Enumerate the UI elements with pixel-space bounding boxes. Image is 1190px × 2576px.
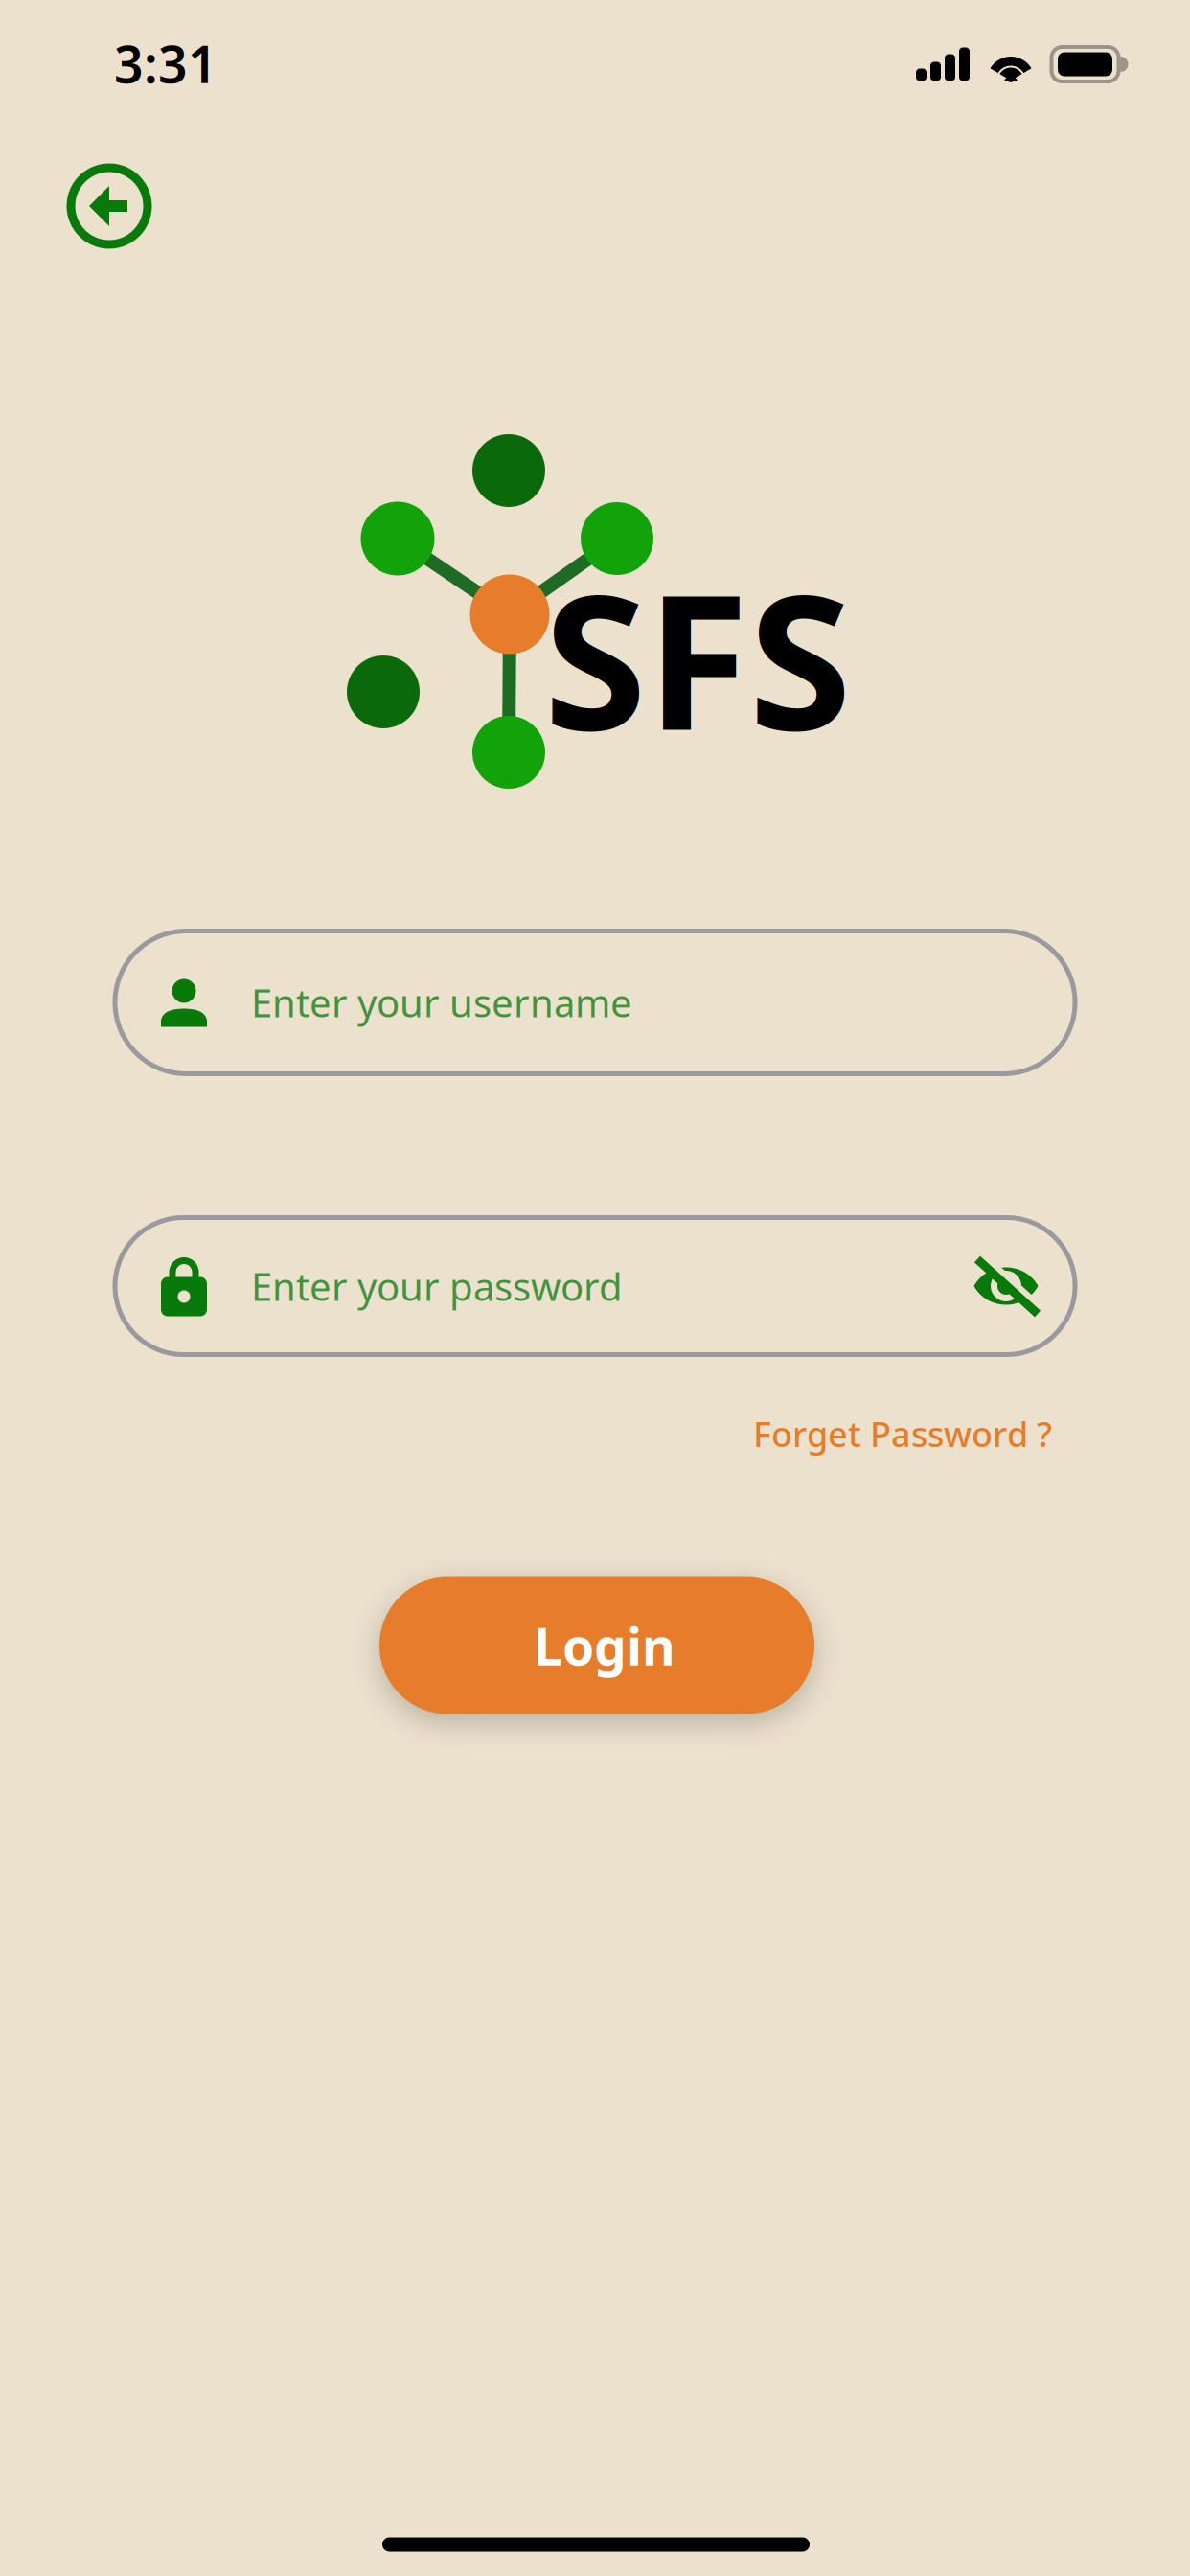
staticText: Login: [534, 1612, 675, 1679]
staticText: Enter your username: [251, 977, 632, 1028]
staticText: 3:31: [114, 29, 217, 97]
button[interactable]: Forget Password ?: [753, 1411, 1052, 1457]
staticText: Enter your password: [251, 1261, 623, 1311]
button[interactable]: Back: [57, 153, 162, 259]
button[interactable]: Show password: [953, 1233, 1059, 1339]
button[interactable]: Enter your password: [115, 1218, 1075, 1355]
button[interactable]: Enter your username: [115, 931, 1075, 1074]
staticText: SFS: [544, 534, 851, 781]
staticText: Forget Password ?: [753, 1411, 1052, 1457]
button[interactable]: Login: [379, 1577, 814, 1714]
